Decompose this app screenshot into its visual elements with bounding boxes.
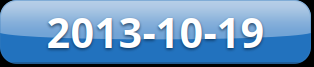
staticText: 2013-10-19 xyxy=(46,5,264,59)
button[interactable]: 2013-10-19 xyxy=(0,0,311,64)
